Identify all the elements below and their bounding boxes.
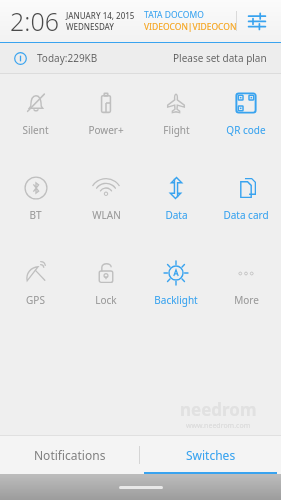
- staticText: Lock: [95, 293, 117, 307]
- staticText: GPS: [26, 293, 45, 307]
- button[interactable]: Switches: [140, 436, 281, 474]
- staticText: WEDNESDAY: [66, 21, 115, 32]
- button[interactable]: GPS: [0, 256, 71, 311]
- staticText: 2:06: [10, 4, 59, 38]
- staticText: Please set data plan: [173, 51, 267, 65]
- staticText: TATA DOCOMO: [144, 9, 204, 21]
- button[interactable]: BT: [0, 171, 71, 226]
- button[interactable]: Settings: [239, 3, 275, 39]
- staticText: VIDEOCON|VIDEOCON: [144, 21, 237, 33]
- button[interactable]: Silent: [0, 86, 71, 141]
- staticText: Notifications: [34, 447, 106, 463]
- button[interactable]: Today:229KB: [0, 43, 281, 73]
- button[interactable]: Notifications: [0, 436, 140, 474]
- staticText: Backlight: [154, 293, 198, 307]
- staticText: Power+: [88, 123, 124, 137]
- button[interactable]: QR code: [211, 86, 281, 141]
- staticText: Silent: [22, 123, 49, 137]
- button[interactable]: Backlight: [141, 256, 211, 311]
- staticText: WLAN: [92, 208, 121, 222]
- button[interactable]: WLAN: [71, 171, 141, 226]
- staticText: Data: [165, 208, 188, 222]
- staticText: needrom: [180, 398, 257, 421]
- staticText: JANUARY 14, 2015: [66, 10, 135, 21]
- button[interactable]: Power+: [71, 86, 141, 141]
- staticText: More: [234, 293, 259, 307]
- staticText: QR code: [226, 123, 266, 137]
- staticText: Switches: [186, 447, 236, 463]
- button[interactable]: More: [211, 256, 281, 311]
- button[interactable]: Data: [141, 171, 211, 226]
- staticText: Flight: [163, 123, 190, 137]
- button[interactable]: Flight: [141, 86, 211, 141]
- button[interactable]: Data card: [211, 171, 281, 226]
- staticText: BT: [29, 208, 42, 222]
- staticText: Data card: [223, 208, 269, 222]
- button[interactable]: Lock: [71, 256, 141, 311]
- staticText: Today:229KB: [37, 51, 98, 65]
- staticText: www.needrom.com: [186, 421, 251, 431]
